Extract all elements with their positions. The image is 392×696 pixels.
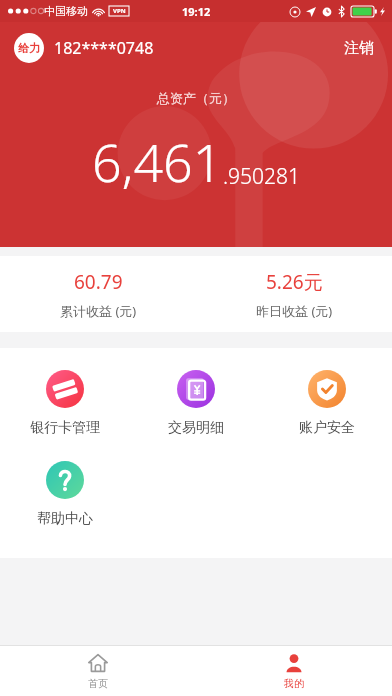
staticText: 19:12 bbox=[182, 4, 211, 19]
button[interactable]: 帮助中心 bbox=[0, 461, 130, 528]
staticText: VPN bbox=[113, 7, 126, 15]
staticText: 昨日收益 (元) bbox=[256, 302, 333, 320]
staticText: .950281 bbox=[223, 162, 301, 191]
staticText: 182****0748 bbox=[54, 37, 154, 59]
button[interactable]: 银行卡管理 bbox=[0, 370, 130, 437]
button[interactable]: 注销 bbox=[340, 35, 378, 62]
button[interactable]: 5.26元 bbox=[196, 256, 392, 332]
staticText: 帮助中心 bbox=[37, 510, 93, 528]
button[interactable]: 给力 bbox=[14, 33, 44, 63]
staticText: 60.79 bbox=[74, 269, 123, 295]
button[interactable]: 账户安全 bbox=[261, 370, 392, 437]
button[interactable]: 60.79 bbox=[0, 256, 196, 332]
staticText: 银行卡管理 bbox=[30, 419, 100, 437]
staticText: 账户安全 bbox=[299, 419, 355, 437]
button[interactable]: 首页 bbox=[0, 646, 196, 696]
staticText: 我的 bbox=[284, 677, 304, 690]
staticText: 总资产（元） bbox=[0, 90, 392, 106]
staticText: 累计收益 (元) bbox=[60, 302, 137, 320]
staticText: 交易明细 bbox=[168, 419, 224, 437]
staticText: 注销 bbox=[344, 39, 374, 58]
staticText: 中国移动 bbox=[44, 4, 88, 18]
staticText: 6,461 bbox=[92, 126, 223, 197]
staticText: 首页 bbox=[88, 677, 108, 690]
staticText: 给力 bbox=[18, 41, 40, 55]
button[interactable]: 交易明细 bbox=[130, 370, 261, 437]
staticText: 5.26元 bbox=[266, 269, 323, 295]
button[interactable]: 我的 bbox=[196, 646, 392, 696]
